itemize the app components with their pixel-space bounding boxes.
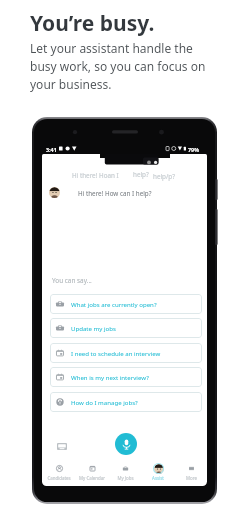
staticText: Hi there! Hoan I: [72, 171, 119, 180]
staticText: My Calendar: [79, 475, 105, 481]
staticText: Assist: [152, 475, 164, 481]
button[interactable]: My Jobs: [109, 463, 141, 481]
button[interactable]: Candidates: [43, 463, 75, 481]
button[interactable]: My Calendar: [76, 463, 108, 481]
staticText: My Jobs: [117, 475, 134, 481]
staticText: When is my next interview?: [71, 373, 149, 381]
staticText: You’re busy.: [30, 9, 155, 38]
staticText: Update my jobs: [71, 324, 116, 332]
staticText: More: [186, 475, 197, 481]
staticText: 79%: [188, 146, 200, 153]
staticText: I need to schedule an interview: [71, 349, 161, 357]
button[interactable]: I need to schedule an interview: [50, 343, 202, 363]
button[interactable]: When is my next interview?: [50, 367, 202, 387]
staticText: help/p?: [153, 172, 175, 181]
button[interactable]: What jobs are currently open?: [50, 294, 202, 314]
button[interactable]: More: [175, 463, 207, 481]
button[interactable]: Update my jobs: [50, 318, 202, 338]
button[interactable]: Voice input: [115, 433, 137, 455]
staticText: Let your assistant handle the busy work,…: [30, 40, 208, 92]
staticText: Candidates: [47, 475, 71, 481]
staticText: 3:41: [46, 146, 57, 153]
staticText: How do I manage jobs?: [71, 398, 138, 406]
button[interactable]: Keyboard: [57, 443, 67, 450]
staticText: What jobs are currently open?: [71, 300, 157, 308]
staticText: Hi there! How can I help?: [78, 189, 152, 198]
staticText: You can say...: [52, 276, 92, 285]
button[interactable]: How do I manage jobs?: [50, 392, 202, 412]
staticText: help?: [133, 170, 149, 179]
button[interactable]: Assist: [142, 463, 174, 481]
